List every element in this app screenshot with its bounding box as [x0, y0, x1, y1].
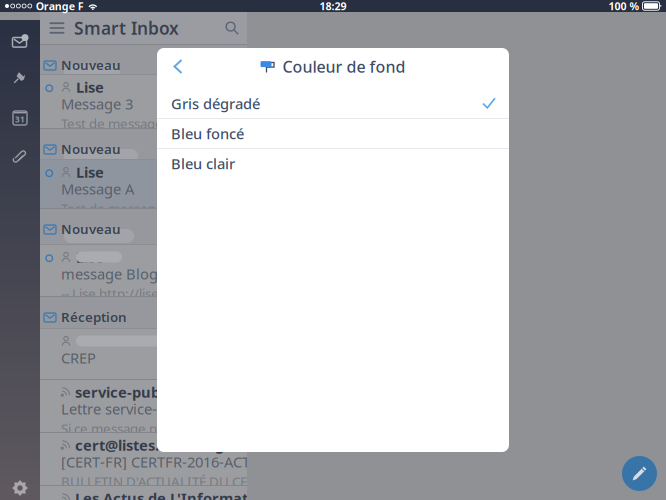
staticText: message Blog: [61, 264, 158, 283]
button[interactable]: Attachments: [0, 20, 40, 52]
button[interactable]: Calendar: [0, 20, 40, 51]
staticText: Nouveau: [61, 220, 121, 238]
button[interactable]: [40, 329, 247, 379]
button[interactable]: Bleu clair: [157, 149, 509, 178]
staticText: Nouveau: [61, 140, 121, 158]
button[interactable]: cert@listes.cert.ssi.g: [40, 433, 247, 485]
button[interactable]: Settings: [0, 20, 40, 48]
staticText: Les Actus de L'Informatici: [75, 488, 264, 500]
staticText: Réception: [61, 308, 127, 326]
button[interactable]: Back: [163, 51, 193, 81]
staticText: Message A: [61, 179, 134, 198]
staticText: Test de messageTest de message: [61, 114, 265, 132]
button[interactable]: Lise: [40, 160, 247, 208]
staticText: 100 %: [608, 0, 639, 13]
staticText: Lise: [76, 162, 104, 182]
button[interactable]: Gris dégradé: [157, 89, 509, 118]
staticText: Test de message Test de message: [61, 199, 268, 217]
staticText: Message 3: [61, 94, 133, 113]
button[interactable]: Search: [217, 12, 247, 44]
staticText: BULLETIN D'ACTUALITÉ DU CERT-FR S . G…: [61, 472, 321, 490]
button[interactable]: service-public.fr: [40, 380, 247, 432]
staticText: [CERT-FR] CERTFR-2016-ACT-008 [ Bull…: [61, 452, 321, 471]
staticText: 31: [15, 114, 25, 125]
staticText: Couleur de fond: [282, 56, 405, 77]
button[interactable]: Lise: [40, 75, 247, 128]
staticText: Bleu foncé: [171, 124, 244, 143]
button[interactable]: Mail: [0, 20, 40, 58]
staticText: 18:29: [319, 0, 346, 13]
staticText: Lise: [76, 247, 104, 267]
staticText: Smart Inbox: [74, 16, 179, 39]
staticText: Gris dégradé: [171, 94, 260, 113]
staticText: Orange F: [36, 0, 84, 13]
button[interactable]: Lise: [40, 245, 247, 296]
button[interactable]: Menu: [40, 12, 74, 44]
staticText: service-public.fr: [75, 382, 193, 402]
staticText: CREP: [61, 348, 96, 367]
staticText: Si ce message ne s'affiche: [61, 419, 218, 437]
staticText: cert@listes.cert.ssi.g: [75, 435, 224, 455]
staticText: Nouveau: [61, 56, 121, 74]
button[interactable]: Bleu foncé: [157, 119, 509, 148]
staticText: Lettre service-public.fr: [61, 399, 214, 418]
button[interactable]: Les Actus de L'Informatici: [40, 486, 247, 500]
staticText: Bleu clair: [171, 154, 235, 173]
button[interactable]: Pinned: [0, 20, 40, 50]
staticText: -- Lise http://liseweb.fr: [61, 284, 199, 302]
staticText: Lise: [76, 77, 104, 97]
